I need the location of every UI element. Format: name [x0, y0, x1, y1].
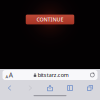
button[interactable]: A	[2, 70, 97, 80]
button[interactable]: Back	[0, 83, 20, 92]
button[interactable]: Share	[40, 83, 60, 92]
button[interactable]: Tabs	[80, 83, 100, 92]
staticText: A	[5, 74, 8, 79]
staticText: bitstarz.com	[38, 71, 69, 79]
button[interactable]: Bookmarks	[60, 83, 80, 92]
staticText: A	[9, 71, 13, 79]
button[interactable]: CONTINUE	[26, 15, 74, 24]
staticText: CONTINUE	[36, 16, 63, 23]
